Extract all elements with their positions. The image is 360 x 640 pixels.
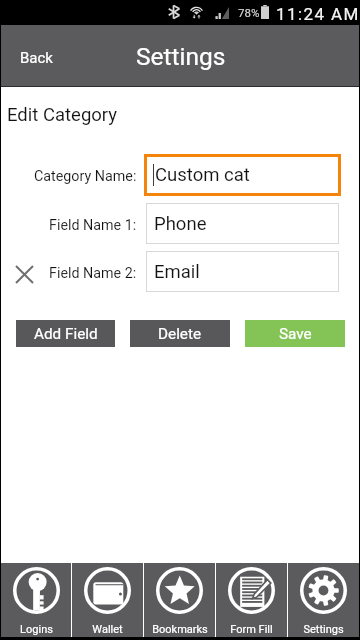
- button[interactable]: Wallet: [72, 563, 143, 637]
- staticText: Wallet: [92, 623, 123, 636]
- staticText: Back: [20, 49, 53, 67]
- staticText: Custom cat: [155, 164, 250, 186]
- button[interactable]: Back: [1, 25, 73, 87]
- staticText: Form Fill: [230, 623, 273, 636]
- button[interactable]: Save: [245, 320, 345, 347]
- button[interactable]: Custom cat: [144, 154, 341, 196]
- staticText: Settings: [303, 623, 344, 636]
- button[interactable]: Bookmarks: [144, 563, 215, 637]
- staticText: Bookmarks: [152, 623, 208, 636]
- staticText: Edit Category: [7, 104, 118, 126]
- staticText: Settings: [136, 42, 226, 71]
- staticText: Field Name 2:: [49, 265, 137, 282]
- staticText: Logins: [20, 623, 53, 636]
- button[interactable]: Form Fill: [216, 563, 287, 637]
- staticText: Field Name 1:: [49, 217, 137, 234]
- button[interactable]: Remove field: [9, 259, 39, 289]
- staticText: 78%: [238, 6, 260, 19]
- staticText: Category Name:: [34, 168, 137, 185]
- staticText: Save: [279, 325, 312, 343]
- staticText: Phone: [154, 213, 207, 235]
- staticText: 11:24 AM: [276, 4, 360, 24]
- button[interactable]: Logins: [1, 563, 71, 637]
- staticText: Add Field: [34, 325, 98, 343]
- button[interactable]: Add Field: [16, 320, 115, 347]
- staticText: Email: [154, 261, 200, 283]
- staticText: Delete: [158, 325, 202, 343]
- button[interactable]: Email: [146, 251, 339, 292]
- button[interactable]: Settings: [288, 563, 359, 637]
- button[interactable]: Phone: [146, 203, 339, 244]
- button[interactable]: Delete: [130, 320, 230, 347]
